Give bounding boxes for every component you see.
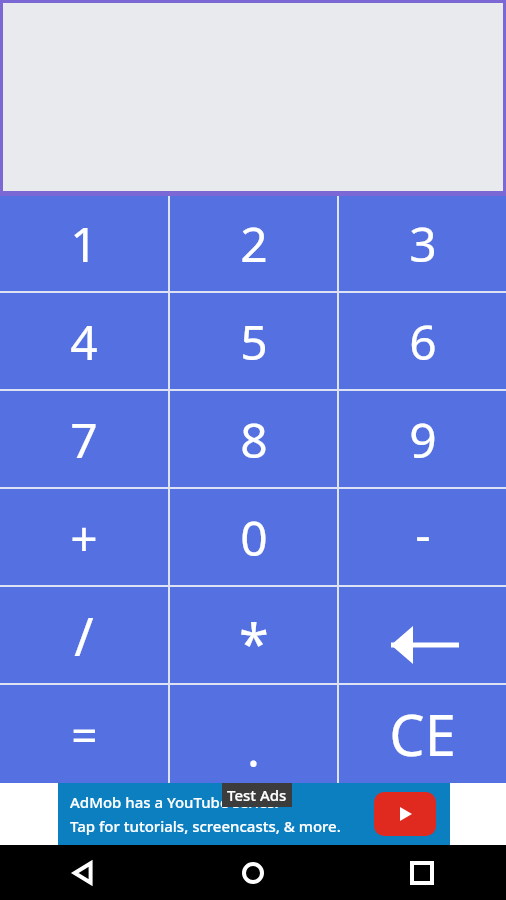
staticText: 6 — [409, 309, 437, 374]
staticText: / — [74, 600, 94, 671]
staticText: 7 — [70, 407, 98, 472]
staticText: + — [70, 505, 98, 570]
button[interactable]: AdMob has a YouTube series! — [58, 783, 450, 845]
staticText: 9 — [409, 407, 437, 472]
button[interactable]: 7 — [0, 391, 168, 487]
button[interactable]: Back — [0, 845, 168, 900]
button[interactable]: 8 — [170, 391, 337, 487]
button[interactable]: - — [339, 489, 506, 585]
button[interactable]: 3 — [339, 196, 506, 291]
staticText: . — [247, 716, 260, 781]
button[interactable]: Home — [168, 845, 337, 900]
staticText: 5 — [240, 309, 268, 374]
button[interactable]: 1 — [0, 196, 168, 291]
staticText: 3 — [409, 211, 437, 276]
button[interactable]: 5 — [170, 293, 337, 389]
staticText: 4 — [70, 309, 98, 374]
staticText: 8 — [240, 407, 268, 472]
staticText: * — [239, 606, 269, 680]
button[interactable]: 6 — [339, 293, 506, 389]
staticText: 1 — [70, 211, 98, 276]
button[interactable]: 2 — [170, 196, 337, 291]
button[interactable]: Backspace — [339, 587, 506, 683]
staticText: AdMob has a YouTube series! — [70, 792, 279, 812]
staticText: CE — [389, 696, 456, 772]
button[interactable]: = — [0, 685, 168, 783]
button[interactable]: 9 — [339, 391, 506, 487]
button[interactable]: CE — [339, 685, 506, 783]
staticText: - — [415, 501, 431, 566]
button[interactable]: / — [0, 587, 168, 683]
button[interactable]: . — [170, 685, 337, 783]
button[interactable]: 0 — [170, 489, 337, 585]
staticText: Tap for tutorials, screencasts, & more. — [70, 816, 341, 836]
staticText: = — [71, 703, 98, 766]
other: YouTube — [374, 792, 436, 836]
button[interactable]: * — [170, 587, 337, 683]
staticText: Test Ads — [227, 785, 287, 805]
button[interactable]: 4 — [0, 293, 168, 389]
button[interactable]: Recent apps — [337, 845, 506, 900]
staticText: 0 — [240, 505, 268, 570]
staticText: 2 — [240, 211, 268, 276]
button[interactable]: + — [0, 489, 168, 585]
